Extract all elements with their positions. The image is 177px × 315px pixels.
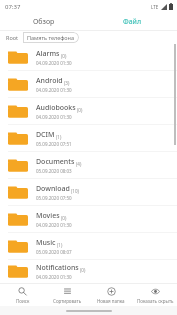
staticText: Documents xyxy=(36,157,75,167)
staticText: (0) xyxy=(61,215,67,221)
button[interactable]: Показать скрыть xyxy=(133,284,177,306)
button[interactable]: Android xyxy=(0,71,177,98)
button[interactable]: Обзор xyxy=(0,13,88,30)
staticText: LTE xyxy=(151,4,159,10)
staticText: Audiobooks xyxy=(36,103,76,113)
button[interactable]: Audiobooks xyxy=(0,98,177,125)
button[interactable]: Новая папка xyxy=(89,284,133,306)
button[interactable]: Download xyxy=(0,179,177,206)
staticText: (0) xyxy=(77,107,83,113)
staticText: (0) xyxy=(80,267,86,273)
staticText: Поиск xyxy=(16,298,30,304)
button[interactable]: Память телефона xyxy=(23,32,79,43)
staticText: Обзор xyxy=(33,17,55,27)
button[interactable]: Alarms xyxy=(0,44,177,71)
staticText: 04.09.2020 01:30 xyxy=(36,222,72,228)
staticText: 07:37 xyxy=(5,3,21,11)
button[interactable]: Notifications xyxy=(0,260,177,283)
button[interactable]: Сортировать xyxy=(45,284,89,306)
staticText: 04.09.2020 01:30 xyxy=(36,87,72,93)
staticText: Память телефона xyxy=(27,34,75,41)
button[interactable]: Movies xyxy=(0,206,177,233)
button[interactable]: Поиск xyxy=(0,284,45,306)
staticText: Android xyxy=(36,76,63,86)
staticText: Показать скрыть xyxy=(137,298,174,304)
staticText: 05.09.2020 08:03 xyxy=(36,168,72,174)
staticText: 05.09.2020 07:50 xyxy=(36,195,72,201)
staticText: DCIM xyxy=(36,130,55,140)
staticText: (3) xyxy=(64,80,70,86)
button[interactable]: DCIM xyxy=(0,125,177,152)
staticText: Alarms xyxy=(36,49,60,59)
staticText: 04.09.2020 01:30 xyxy=(36,114,72,120)
staticText: Movies xyxy=(36,211,60,221)
staticText: Download xyxy=(36,184,70,194)
button[interactable]: Root xyxy=(4,34,21,41)
staticText: Music xyxy=(36,238,56,248)
staticText: (1) xyxy=(57,242,63,248)
staticText: (4) xyxy=(76,161,82,167)
staticText: 05.09.2020 08:07 xyxy=(36,249,72,255)
button[interactable]: Documents xyxy=(0,152,177,179)
staticText: Файл xyxy=(123,17,142,27)
button[interactable]: Music xyxy=(0,233,177,260)
staticText: 04.09.2020 01:30 xyxy=(36,274,72,280)
button[interactable]: Файл xyxy=(88,13,177,30)
staticText: 04.09.2020 01:30 xyxy=(36,60,72,66)
staticText: Notifications xyxy=(36,263,79,273)
staticText: (10) xyxy=(71,188,79,194)
staticText: 05.09.2020 07:51 xyxy=(36,141,72,147)
staticText: Новая папка xyxy=(97,298,125,304)
staticText: Сортировать xyxy=(53,298,82,304)
staticText: (0) xyxy=(61,53,67,59)
staticText: (1) xyxy=(56,134,62,140)
staticText: Root xyxy=(6,34,19,41)
